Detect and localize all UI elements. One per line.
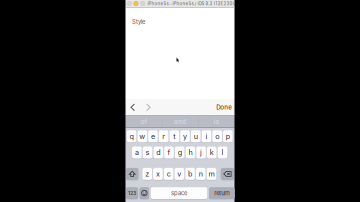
staticText: t <box>173 132 175 141</box>
button[interactable]: is <box>198 116 234 128</box>
button[interactable]: of <box>125 116 162 128</box>
staticText: of <box>141 118 147 125</box>
staticText: n <box>199 169 203 178</box>
staticText: and <box>174 118 186 125</box>
staticText: 123 <box>128 190 136 196</box>
button[interactable]: Delete <box>221 168 234 180</box>
staticText: Done <box>216 104 232 111</box>
button[interactable]: y <box>180 130 190 142</box>
staticText: e <box>151 132 155 141</box>
staticText: x <box>156 169 160 178</box>
button[interactable]: f <box>164 146 174 158</box>
button[interactable]: l <box>218 146 227 158</box>
staticText: r <box>162 132 165 141</box>
button[interactable]: x <box>153 168 163 180</box>
button[interactable]: p <box>223 130 233 142</box>
button[interactable]: Previous field <box>126 99 140 116</box>
staticText: i <box>205 132 207 141</box>
button[interactable]: Minimize window <box>134 1 138 6</box>
button[interactable]: v <box>174 168 184 180</box>
staticText: p <box>226 132 230 141</box>
button[interactable]: m <box>207 168 216 180</box>
button[interactable]: and <box>162 116 198 128</box>
button[interactable]: n <box>196 168 206 180</box>
button[interactable]: b <box>185 168 195 180</box>
button[interactable]: Shift <box>126 168 138 180</box>
staticText: space <box>171 190 187 197</box>
staticText: z <box>145 169 149 178</box>
button[interactable]: z <box>142 168 152 180</box>
staticText: h <box>188 148 192 157</box>
staticText: return <box>214 190 229 197</box>
staticText: y <box>183 132 187 141</box>
staticText: j <box>200 148 202 157</box>
button[interactable]: h <box>186 146 195 158</box>
button[interactable]: w <box>137 130 147 142</box>
button[interactable]: o <box>212 130 222 142</box>
staticText: b <box>188 169 192 178</box>
button[interactable]: e <box>148 130 158 142</box>
button[interactable]: r <box>159 130 168 142</box>
staticText: o <box>215 132 219 141</box>
button[interactable]: Emoji keyboard <box>140 187 149 199</box>
staticText: v <box>177 169 181 178</box>
staticText: l <box>221 148 223 157</box>
button[interactable]: j <box>196 146 206 158</box>
staticText: d <box>156 148 160 157</box>
button[interactable]: q <box>127 130 136 142</box>
staticText: Style <box>132 18 145 25</box>
staticText: q <box>129 132 133 141</box>
button[interactable]: s <box>143 146 152 158</box>
button[interactable]: Done <box>210 99 232 116</box>
button[interactable]: u <box>191 130 201 142</box>
staticText: s <box>146 148 150 157</box>
staticText: u <box>194 132 198 141</box>
staticText: a <box>135 148 139 157</box>
button[interactable]: k <box>207 146 217 158</box>
button[interactable]: Next field <box>141 99 155 116</box>
button[interactable]: return <box>209 187 234 199</box>
staticText: w <box>139 132 145 141</box>
button[interactable]: c <box>164 168 173 180</box>
staticText: k <box>210 148 214 157</box>
staticText: m <box>208 169 214 178</box>
button[interactable]: Close window <box>127 1 131 6</box>
staticText: is <box>214 118 219 125</box>
button[interactable]: Numbers <box>126 187 138 199</box>
button[interactable]: g <box>175 146 185 158</box>
button[interactable]: Zoom window <box>140 1 145 6</box>
staticText: g <box>178 148 182 157</box>
button[interactable]: space <box>151 187 207 199</box>
button[interactable]: i <box>202 130 211 142</box>
staticText: f <box>167 148 170 157</box>
button[interactable]: a <box>132 146 142 158</box>
staticText: c <box>167 169 171 178</box>
staticText: iPhone 5s - iPhone 5s / iOS 9.3 (13E230) <box>147 1 234 6</box>
button[interactable]: d <box>153 146 163 158</box>
button[interactable]: t <box>169 130 179 142</box>
